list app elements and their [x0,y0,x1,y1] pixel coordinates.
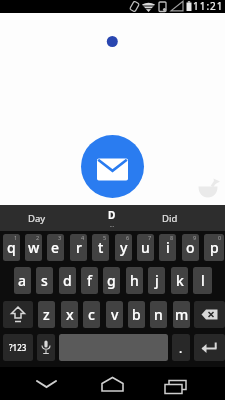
staticText: . [179,340,183,356]
staticText: q [7,238,16,257]
staticText: l [201,271,205,290]
button[interactable]: e [47,234,64,261]
button[interactable] [194,334,225,361]
staticText: 8 [170,234,174,241]
staticText: n [154,305,163,324]
button[interactable]: x [61,301,78,328]
staticText: 1 [14,234,18,241]
staticText: 5 [103,234,107,241]
staticText: p [210,238,219,257]
staticText: 11:21 [193,0,224,13]
staticText: k [176,271,184,290]
button[interactable] [194,301,225,328]
staticText: v [111,305,119,324]
staticText: a [18,271,27,290]
button[interactable]: . [172,334,190,361]
staticText: z [43,305,50,324]
button[interactable]: ?123 [3,334,33,361]
button[interactable]: z [38,301,55,328]
staticText: 4 [81,234,85,241]
button[interactable]: m [173,301,190,328]
staticText: s [41,271,48,290]
button[interactable]: i [159,234,176,261]
button[interactable]: r [70,234,87,261]
button[interactable]: Day [7,205,67,231]
button[interactable]: p [204,234,224,261]
staticText: b [132,305,141,324]
button[interactable]: s [36,267,53,294]
staticText: Day [28,212,46,225]
button[interactable]: f [81,267,98,294]
button[interactable] [37,334,55,361]
button[interactable]: k [171,267,188,294]
staticText: r [76,238,82,257]
staticText: i [166,238,170,257]
staticText: g [107,271,116,290]
staticText: Did [162,212,178,225]
staticText: ... [110,222,115,229]
staticText: h [130,271,139,290]
button[interactable]: a [14,267,31,294]
button[interactable]: o [182,234,199,261]
staticText: 6 [126,234,130,241]
staticText: y [120,238,128,257]
button[interactable]: u [137,234,154,261]
staticText: u [141,238,150,257]
staticText: 0 [218,234,222,241]
button[interactable] [155,370,200,400]
staticText: 2 [36,234,40,241]
staticText: m [175,305,189,324]
button[interactable] [90,370,135,400]
staticText: c [88,305,95,324]
button[interactable] [3,301,33,328]
button[interactable]: d [59,267,76,294]
staticText: d [63,271,72,290]
button[interactable]: b [128,301,145,328]
button[interactable]: t [92,234,109,261]
button[interactable]: D [82,205,142,231]
staticText: ?123 [9,342,27,353]
staticText: x [66,305,74,324]
staticText: 9 [193,234,197,241]
staticText: D [108,208,116,222]
button[interactable]: w [25,234,42,261]
staticText: w [28,238,40,257]
button[interactable]: c [83,301,100,328]
button[interactable]: l [193,267,212,294]
staticText: j [155,271,159,290]
button[interactable] [25,370,70,400]
staticText: o [186,238,195,257]
button[interactable]: Did [140,205,200,231]
staticText: f [87,271,92,290]
button[interactable]: q [3,234,20,261]
button[interactable]: n [150,301,167,328]
staticText: t [98,238,104,257]
button[interactable]: v [106,301,123,328]
staticText: 3 [58,234,62,241]
staticText: e [51,238,60,257]
staticText: 7 [148,234,152,241]
button[interactable]: g [103,267,120,294]
button[interactable]: h [126,267,143,294]
button[interactable]: y [115,234,132,261]
button[interactable]: j [148,267,165,294]
